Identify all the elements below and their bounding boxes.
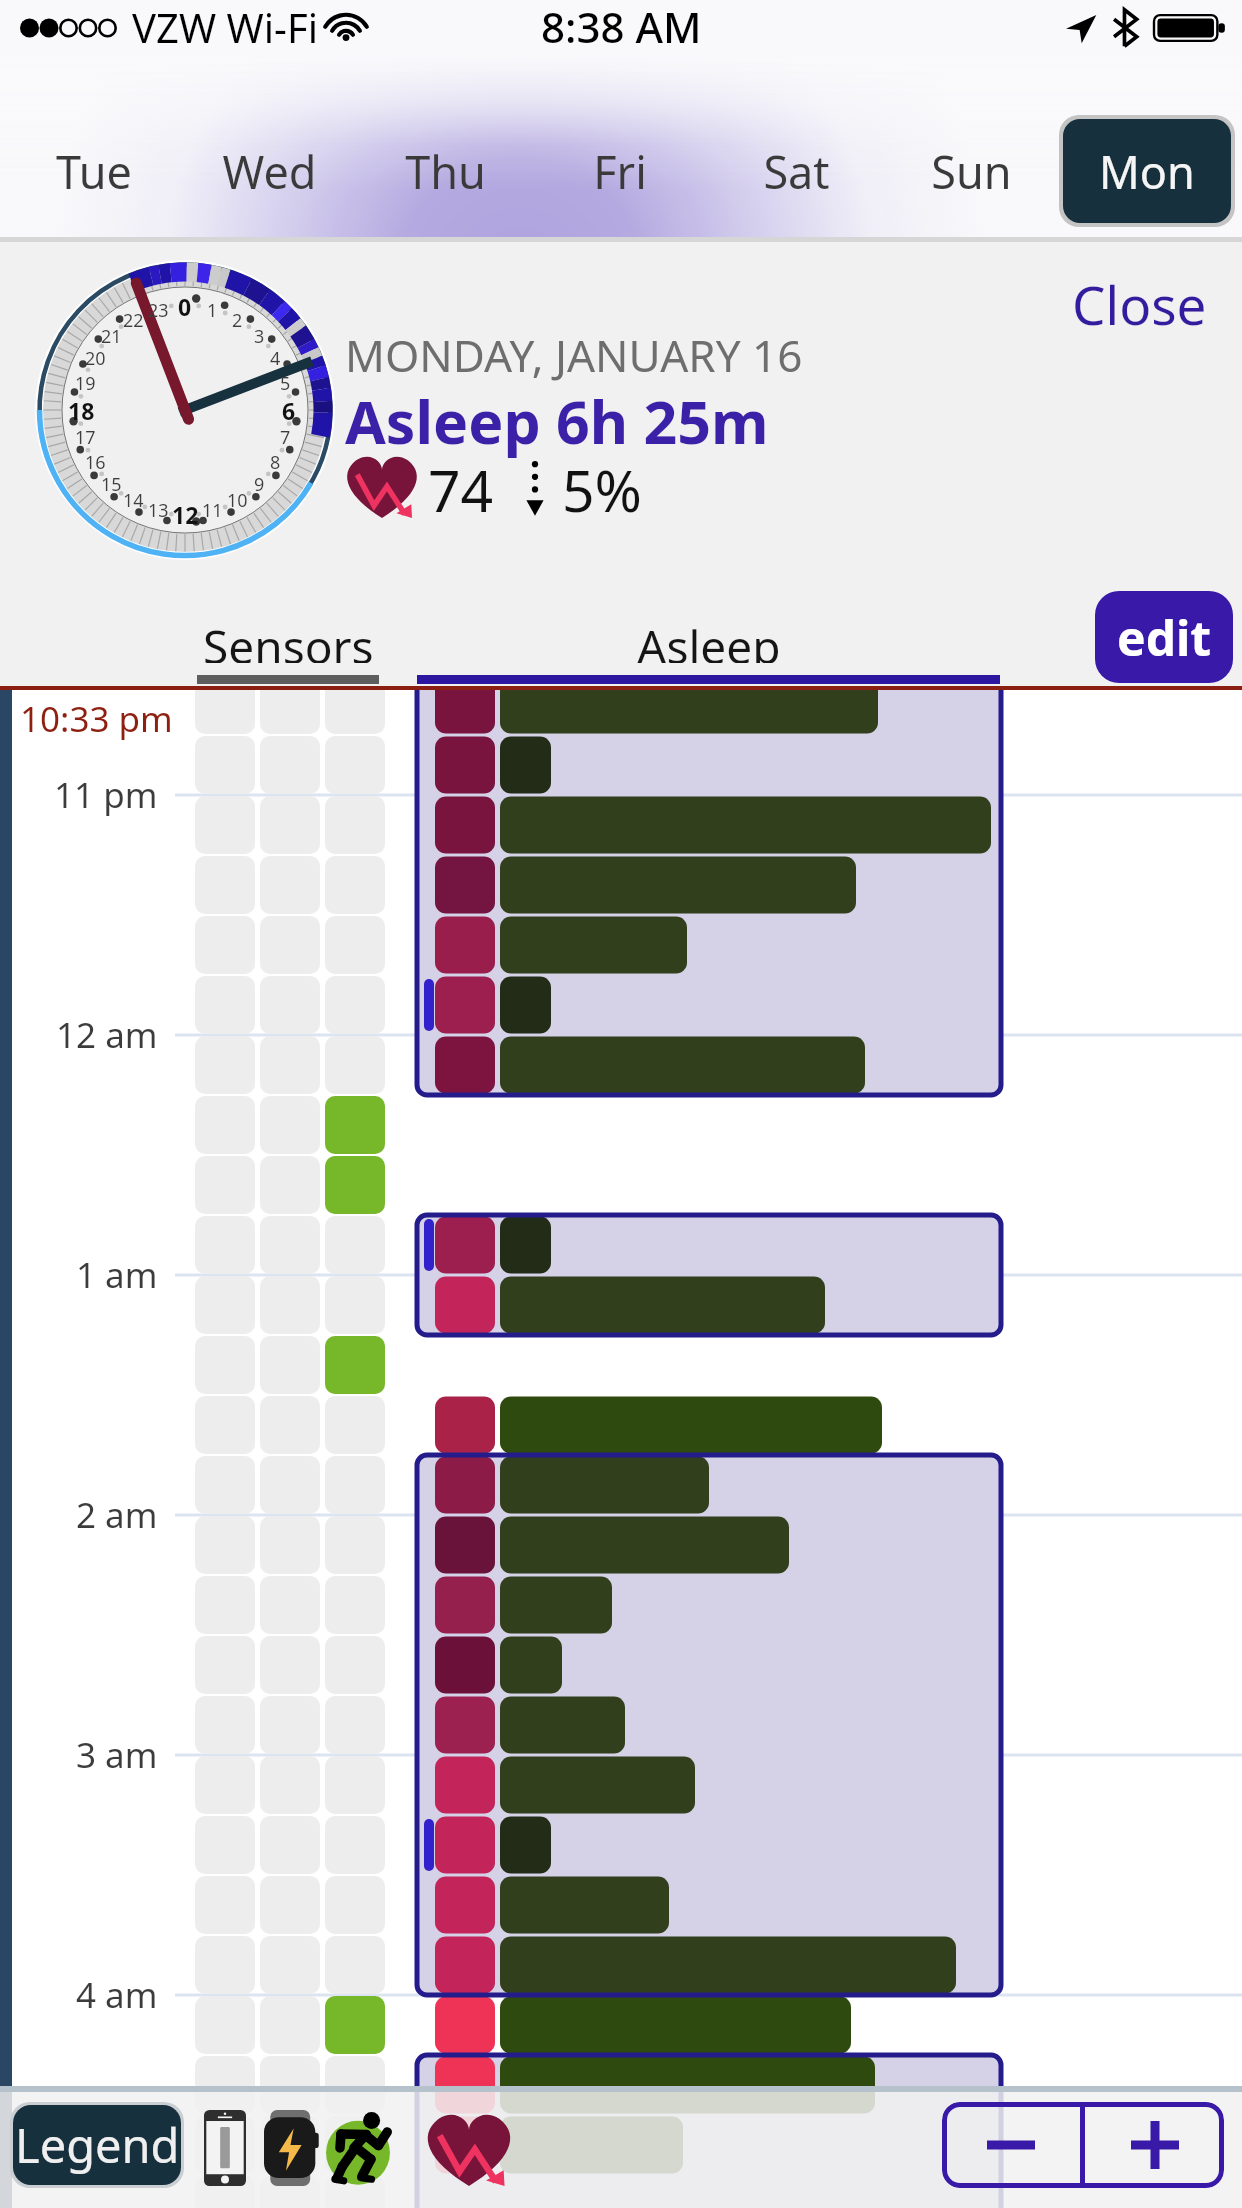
staticText: VZW Wi-Fi bbox=[132, 0, 318, 54]
staticText: 19 bbox=[75, 371, 96, 396]
staticText: Wed bbox=[222, 141, 317, 202]
staticText: 74 bbox=[428, 451, 494, 523]
staticText: 2 am bbox=[76, 1491, 158, 1539]
staticText: 16 bbox=[85, 450, 106, 475]
staticText: 17 bbox=[75, 425, 96, 450]
staticText: 12 bbox=[172, 499, 199, 529]
staticText: Mon bbox=[1099, 141, 1195, 202]
staticText: Tue bbox=[56, 141, 132, 202]
staticText: 14 bbox=[123, 488, 144, 513]
staticText: 5 bbox=[280, 371, 291, 396]
staticText: 2 bbox=[232, 308, 243, 333]
button[interactable]: Phone sensor bbox=[204, 2110, 246, 2186]
staticText: 10:33 pm bbox=[20, 695, 173, 743]
staticText: 18 bbox=[68, 395, 95, 425]
staticText: Fri bbox=[593, 141, 647, 202]
staticText: Asleep 6h 25m bbox=[345, 381, 769, 461]
button[interactable]: edit bbox=[1095, 591, 1233, 683]
staticText: 7 bbox=[280, 425, 291, 450]
staticText: 4 am bbox=[76, 1971, 158, 2019]
staticText: 3 am bbox=[76, 1731, 158, 1779]
button[interactable]: Fri bbox=[536, 114, 704, 228]
staticText: 20 bbox=[85, 346, 106, 371]
staticText: Sun bbox=[931, 141, 1012, 202]
staticText: 5% bbox=[562, 451, 642, 523]
button[interactable]: Zoom in bbox=[1085, 2102, 1224, 2188]
button[interactable]: Close bbox=[1072, 268, 1207, 340]
staticText: Asleep bbox=[637, 615, 781, 663]
staticText: Close bbox=[1072, 268, 1207, 340]
staticText: 23 bbox=[148, 298, 169, 323]
staticText: 4 bbox=[270, 346, 281, 371]
staticText: 8 bbox=[270, 450, 281, 475]
staticText: 11 bbox=[202, 498, 223, 523]
staticText: 1 bbox=[207, 298, 218, 323]
staticText: edit bbox=[1117, 605, 1212, 670]
staticText: 12 am bbox=[56, 1011, 158, 1059]
button[interactable]: Watch sensor bbox=[264, 2110, 321, 2186]
staticText: 9 bbox=[254, 472, 265, 497]
staticText: 3 bbox=[254, 324, 265, 349]
staticText: 0 bbox=[178, 291, 192, 321]
button[interactable]: Tue bbox=[10, 114, 178, 228]
staticText: Sat bbox=[763, 141, 830, 202]
staticText: 10 bbox=[227, 488, 248, 513]
staticText: 21 bbox=[101, 324, 122, 349]
staticText: 1 am bbox=[76, 1251, 158, 1299]
button[interactable]: Legend bbox=[13, 2105, 181, 2185]
staticText: 11 pm bbox=[54, 771, 158, 819]
staticText: Legend bbox=[15, 2113, 180, 2177]
button[interactable]: Asleep bbox=[417, 615, 1000, 663]
button[interactable]: Sun bbox=[887, 114, 1055, 228]
staticText: Sensors bbox=[203, 615, 374, 663]
staticText: MONDAY, JANUARY 16 bbox=[345, 325, 803, 385]
staticText: Thu bbox=[405, 141, 486, 202]
button[interactable]: Zoom out bbox=[942, 2102, 1080, 2188]
staticText: 6 bbox=[282, 395, 296, 425]
staticText: 8:38 AM bbox=[541, 0, 702, 54]
button[interactable]: Mon bbox=[1063, 119, 1231, 223]
staticText: 22 bbox=[123, 308, 144, 333]
button[interactable]: Heart rate bbox=[424, 2114, 514, 2186]
staticText: 15 bbox=[101, 472, 122, 497]
staticText: 13 bbox=[148, 498, 169, 523]
button[interactable]: Thu bbox=[361, 114, 529, 228]
button[interactable]: Sensors bbox=[118, 615, 458, 663]
button[interactable]: Activity sensor bbox=[324, 2108, 392, 2188]
button[interactable]: Sat bbox=[712, 114, 880, 228]
button[interactable]: Wed bbox=[185, 114, 353, 228]
